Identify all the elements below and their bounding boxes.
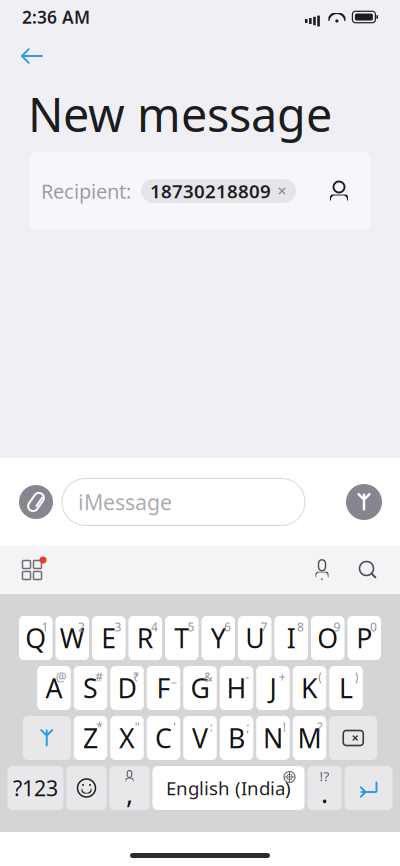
- button[interactable]: I: [274, 616, 308, 660]
- staticText: !: [283, 719, 286, 735]
- staticText: N: [263, 720, 283, 756]
- button[interactable]: C: [147, 716, 180, 760]
- staticText: I: [287, 620, 296, 656]
- staticText: J: [269, 670, 276, 706]
- button[interactable]: D: [110, 666, 144, 710]
- staticText: (: [318, 669, 322, 685]
- button[interactable]: N: [256, 716, 290, 760]
- staticText: !?: [319, 767, 329, 785]
- button[interactable]: M: [293, 716, 326, 760]
- button[interactable]: J: [256, 666, 290, 710]
- staticText: ;: [246, 719, 249, 735]
- staticText: 5: [187, 619, 194, 635]
- staticText: 4: [151, 619, 158, 635]
- staticText: New message: [28, 83, 332, 145]
- button[interactable]: Space, English (India): [152, 766, 304, 810]
- button[interactable]: Apps: [12, 549, 52, 591]
- staticText: Y: [211, 620, 226, 656]
- staticText: 7: [260, 619, 267, 635]
- button[interactable]: A: [37, 666, 71, 710]
- staticText: V: [192, 720, 208, 756]
- button[interactable]: O: [311, 616, 344, 660]
- staticText: ?: [317, 719, 322, 735]
- button[interactable]: Period: [307, 766, 341, 810]
- staticText: 18730218809: [150, 179, 271, 203]
- button[interactable]: W: [55, 616, 89, 660]
- staticText: -: [245, 669, 249, 685]
- staticText: O: [317, 620, 338, 656]
- staticText: X: [119, 720, 135, 756]
- button[interactable]: G: [183, 666, 217, 710]
- staticText: E: [101, 620, 116, 656]
- staticText: _: [171, 669, 176, 685]
- staticText: A: [45, 670, 62, 706]
- button[interactable]: Back: [10, 36, 54, 76]
- staticText: &: [204, 669, 213, 685]
- staticText: *: [96, 719, 103, 735]
- button[interactable]: B: [220, 716, 253, 760]
- staticText: 8: [297, 619, 304, 635]
- button[interactable]: Delete: [329, 716, 377, 760]
- staticText: Z: [83, 720, 98, 756]
- staticText: W: [60, 620, 85, 656]
- staticText: .: [321, 775, 328, 811]
- staticText: ,: [126, 775, 133, 811]
- staticText: B: [228, 720, 245, 756]
- staticText: ₹: [133, 669, 140, 685]
- staticText: 0: [370, 619, 377, 635]
- button[interactable]: E: [92, 616, 125, 660]
- staticText: +: [279, 669, 286, 685]
- button[interactable]: Dictate: [302, 549, 342, 591]
- button[interactable]: Emoji: [66, 766, 106, 810]
- button[interactable]: V: [183, 716, 217, 760]
- button[interactable]: P: [347, 616, 381, 660]
- staticText: H: [226, 670, 246, 706]
- staticText: ": [135, 719, 140, 735]
- button[interactable]: Shift: [23, 716, 71, 760]
- button[interactable]: X: [110, 716, 144, 760]
- button[interactable]: L: [329, 666, 363, 710]
- staticText: P: [356, 620, 372, 656]
- staticText: D: [117, 670, 136, 706]
- staticText: C: [155, 720, 172, 756]
- staticText: 2: [78, 619, 85, 635]
- button[interactable]: Q: [19, 616, 52, 660]
- button[interactable]: Search: [348, 549, 388, 591]
- staticText: #: [95, 669, 103, 685]
- button[interactable]: Send: [342, 478, 386, 526]
- button[interactable]: iMessage: [62, 478, 305, 525]
- button[interactable]: S: [74, 666, 107, 710]
- button[interactable]: Return: [344, 766, 392, 810]
- button[interactable]: T: [165, 616, 198, 660]
- staticText: L: [339, 670, 353, 706]
- button[interactable]: H: [220, 666, 253, 710]
- button[interactable]: Attach: [14, 478, 58, 526]
- staticText: @: [56, 669, 67, 685]
- button[interactable]: K: [293, 666, 326, 710]
- staticText: ': [173, 719, 176, 735]
- staticText: F: [156, 670, 170, 706]
- staticText: 2:36 AM: [22, 5, 90, 28]
- staticText: iMessage: [78, 488, 172, 516]
- staticText: G: [190, 670, 209, 706]
- button[interactable]: Recipient:: [29, 152, 371, 230]
- button[interactable]: ?123: [7, 766, 63, 810]
- staticText: T: [174, 620, 189, 656]
- button[interactable]: Z: [74, 716, 107, 760]
- button[interactable]: Y: [201, 616, 235, 660]
- staticText: R: [137, 620, 154, 656]
- staticText: :: [210, 719, 213, 735]
- staticText: Q: [25, 620, 46, 656]
- button[interactable]: U: [238, 616, 271, 660]
- staticText: English (India): [166, 776, 291, 800]
- staticText: 6: [224, 619, 231, 635]
- staticText: 1: [41, 619, 48, 635]
- staticText: M: [297, 720, 321, 756]
- staticText: S: [83, 670, 98, 706]
- button[interactable]: F: [147, 666, 180, 710]
- staticText: ): [355, 669, 359, 685]
- staticText: K: [301, 670, 318, 706]
- button[interactable]: Comma: [109, 766, 149, 810]
- staticText: 3: [114, 619, 121, 635]
- button[interactable]: R: [128, 616, 162, 660]
